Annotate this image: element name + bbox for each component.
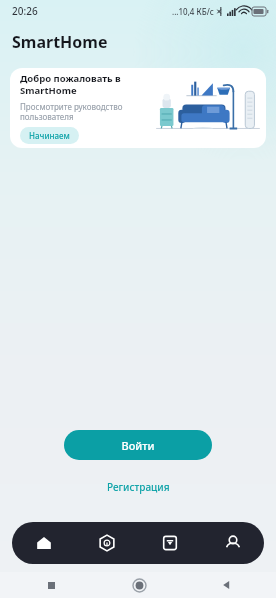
button[interactable]: Profile bbox=[201, 522, 264, 564]
button[interactable]: Регистрация bbox=[97, 476, 180, 498]
staticText: Добро пожаловать в SmartHome bbox=[20, 72, 121, 97]
button[interactable]: Devices bbox=[138, 522, 201, 564]
staticText: Просмотрите руководство пользователя bbox=[20, 101, 123, 122]
button[interactable]: Войти bbox=[64, 430, 212, 460]
button[interactable]: Back bbox=[214, 573, 238, 597]
button[interactable]: Automation bbox=[75, 522, 138, 564]
button[interactable]: Home bbox=[127, 573, 151, 597]
staticText: 20:26 bbox=[12, 4, 38, 18]
staticText: Начинаем bbox=[29, 130, 70, 141]
button[interactable]: Home bbox=[12, 522, 75, 564]
button[interactable]: Добро пожаловать в SmartHome bbox=[10, 68, 266, 148]
staticText: Регистрация bbox=[107, 480, 170, 494]
staticText: ...10,4 КБ/с bbox=[172, 6, 214, 17]
button[interactable]: Recents bbox=[39, 573, 63, 597]
staticText: SmartHome bbox=[12, 31, 108, 53]
staticText: Войти bbox=[121, 438, 155, 453]
button[interactable]: Начинаем bbox=[20, 127, 79, 144]
